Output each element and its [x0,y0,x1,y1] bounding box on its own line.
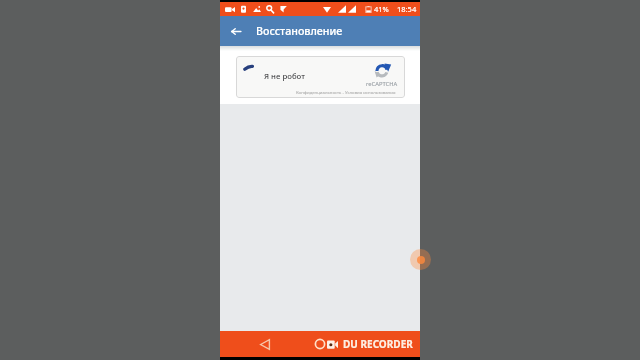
staticText: 41% [374,4,389,14]
button[interactable]: Back [255,331,275,357]
staticText: reCAPTCHA [366,80,398,88]
staticText: Я не робот [264,71,305,82]
button[interactable]: Screen recorder [410,249,431,270]
staticText: DU RECORDER [343,337,413,351]
staticText: Конфиденциальность - Условия использован… [296,89,396,95]
staticText: 18:54 [397,4,417,14]
button[interactable]: Back [220,16,252,46]
staticText: Восстановление [256,24,343,39]
button[interactable]: I am not a robot checkbox [239,58,258,74]
